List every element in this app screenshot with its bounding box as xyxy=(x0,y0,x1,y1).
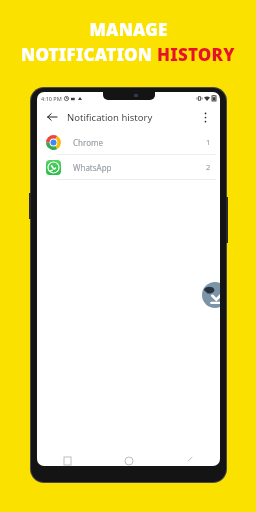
button[interactable]: Screen recorder pointer xyxy=(202,282,220,308)
button[interactable]: Back xyxy=(43,108,61,126)
staticText: 1 xyxy=(206,137,211,147)
staticText: Chrome xyxy=(73,137,206,148)
button[interactable]: More options xyxy=(196,108,214,126)
staticText: NOTIFICATION xyxy=(21,43,157,66)
button[interactable]: Chrome xyxy=(37,130,220,154)
button[interactable]: WhatsApp xyxy=(37,155,220,179)
staticText: WhatsApp xyxy=(73,162,206,173)
staticText: 2 xyxy=(206,162,211,172)
staticText: 4:10 PM xyxy=(41,95,62,102)
staticText: MANAGE xyxy=(89,18,168,41)
staticText: HISTORY xyxy=(157,43,235,66)
staticText: Notification history xyxy=(67,111,196,124)
